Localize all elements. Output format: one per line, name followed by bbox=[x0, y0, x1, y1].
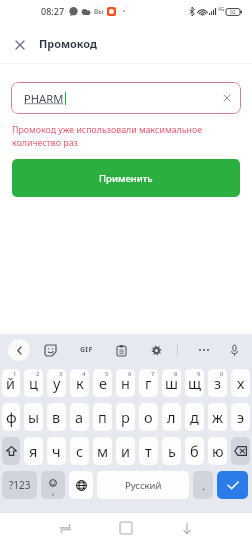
button[interactable]: Recent apps bbox=[45, 512, 85, 544]
button[interactable]: к bbox=[70, 369, 89, 397]
staticText: х bbox=[237, 373, 245, 393]
button[interactable]: б bbox=[185, 437, 204, 465]
staticText: о bbox=[144, 407, 153, 427]
button[interactable]: л bbox=[162, 403, 181, 431]
staticText: 92 bbox=[230, 9, 236, 16]
button[interactable]: ч bbox=[47, 437, 66, 465]
staticText: 7 bbox=[151, 370, 155, 378]
staticText: к bbox=[76, 373, 84, 393]
button[interactable]: ?123 bbox=[2, 471, 37, 499]
button[interactable]: Close bbox=[6, 31, 34, 59]
button[interactable]: д bbox=[185, 403, 204, 431]
staticText: Применить bbox=[99, 172, 153, 185]
staticText: Русский bbox=[125, 479, 162, 492]
staticText: PHARM bbox=[24, 91, 64, 106]
staticText: 5 bbox=[105, 370, 109, 378]
staticText: 08:27 bbox=[41, 5, 65, 17]
staticText: г bbox=[145, 373, 152, 393]
button[interactable]: я bbox=[24, 437, 43, 465]
staticText: ю bbox=[212, 441, 224, 461]
staticText: щ bbox=[188, 373, 202, 393]
staticText: 3 bbox=[59, 370, 63, 378]
staticText: 2 bbox=[36, 370, 40, 378]
staticText: э bbox=[237, 407, 245, 427]
staticText: в bbox=[52, 407, 61, 427]
button[interactable]: Русский bbox=[97, 471, 189, 499]
staticText: я bbox=[29, 441, 38, 461]
button[interactable]: Home bbox=[106, 512, 146, 544]
staticText: н bbox=[121, 373, 130, 393]
staticText: л bbox=[167, 407, 176, 427]
button[interactable]: в bbox=[47, 403, 66, 431]
button[interactable]: Settings bbox=[145, 339, 167, 361]
staticText: е bbox=[99, 373, 107, 393]
staticText: ь bbox=[168, 441, 176, 461]
button[interactable]: о bbox=[139, 403, 158, 431]
button[interactable]: PHARM bbox=[11, 82, 241, 114]
staticText: ч bbox=[52, 441, 61, 461]
staticText: 4 bbox=[82, 370, 86, 378]
button[interactable]: ы bbox=[24, 403, 43, 431]
staticText: Промокод bbox=[39, 36, 97, 51]
button[interactable]: у bbox=[47, 369, 66, 397]
button[interactable]: ю bbox=[208, 437, 227, 465]
staticText: 8 bbox=[174, 370, 178, 378]
staticText: с bbox=[76, 441, 84, 461]
button[interactable]: г bbox=[139, 369, 158, 397]
staticText: и bbox=[121, 441, 131, 461]
staticText: ц bbox=[29, 373, 38, 393]
button[interactable]: м bbox=[93, 437, 112, 465]
button[interactable]: щ bbox=[185, 369, 204, 397]
button[interactable]: Back bbox=[167, 512, 207, 544]
button[interactable]: т bbox=[139, 437, 158, 465]
staticText: з bbox=[214, 373, 222, 393]
staticText: у bbox=[53, 373, 61, 393]
button[interactable]: э bbox=[231, 403, 250, 431]
button[interactable]: п bbox=[93, 403, 112, 431]
button[interactable]: Emoji bbox=[41, 471, 65, 499]
staticText: 1 bbox=[13, 370, 17, 378]
button[interactable]: х bbox=[231, 369, 250, 397]
button[interactable]: ь bbox=[162, 437, 181, 465]
button[interactable]: . bbox=[193, 471, 213, 499]
staticText: ?123 bbox=[9, 478, 31, 492]
button[interactable]: Enter bbox=[217, 471, 248, 499]
button[interactable]: Clear bbox=[215, 86, 239, 110]
staticText: ы bbox=[28, 407, 40, 427]
staticText: , bbox=[52, 485, 55, 497]
staticText: 6 bbox=[128, 370, 132, 378]
button[interactable]: Shift bbox=[2, 437, 20, 465]
button[interactable]: ш bbox=[162, 369, 181, 397]
button[interactable]: Voice input bbox=[223, 339, 245, 361]
button[interactable]: Clipboard bbox=[110, 339, 132, 361]
button[interactable]: Stickers bbox=[39, 339, 61, 361]
button[interactable]: GIF bbox=[75, 339, 97, 361]
button[interactable]: ж bbox=[208, 403, 227, 431]
button[interactable]: а bbox=[70, 403, 89, 431]
staticText: б bbox=[190, 441, 199, 461]
staticText: GIF bbox=[80, 345, 93, 355]
staticText: 4G bbox=[218, 6, 225, 13]
button[interactable]: й bbox=[2, 369, 20, 397]
button[interactable]: з bbox=[208, 369, 227, 397]
staticText: й bbox=[6, 373, 16, 393]
button[interactable]: ц bbox=[24, 369, 43, 397]
button[interactable]: н bbox=[116, 369, 135, 397]
button[interactable]: ф bbox=[2, 403, 20, 431]
button[interactable]: и bbox=[116, 437, 135, 465]
staticText: 9 bbox=[197, 370, 201, 378]
button[interactable]: More options bbox=[193, 339, 215, 361]
button[interactable]: Change language bbox=[69, 471, 93, 499]
staticText: ж bbox=[212, 407, 224, 427]
staticText: Вы bbox=[94, 7, 104, 16]
button[interactable]: Применить bbox=[12, 159, 240, 197]
button[interactable]: е bbox=[93, 369, 112, 397]
staticText: . bbox=[202, 478, 205, 493]
button[interactable]: Back bbox=[8, 339, 30, 361]
button[interactable]: Backspace bbox=[231, 437, 250, 465]
staticText: а bbox=[75, 407, 84, 427]
button[interactable]: р bbox=[116, 403, 135, 431]
staticText: 0 bbox=[220, 370, 224, 378]
button[interactable]: с bbox=[70, 437, 89, 465]
staticText: ф bbox=[6, 407, 17, 427]
